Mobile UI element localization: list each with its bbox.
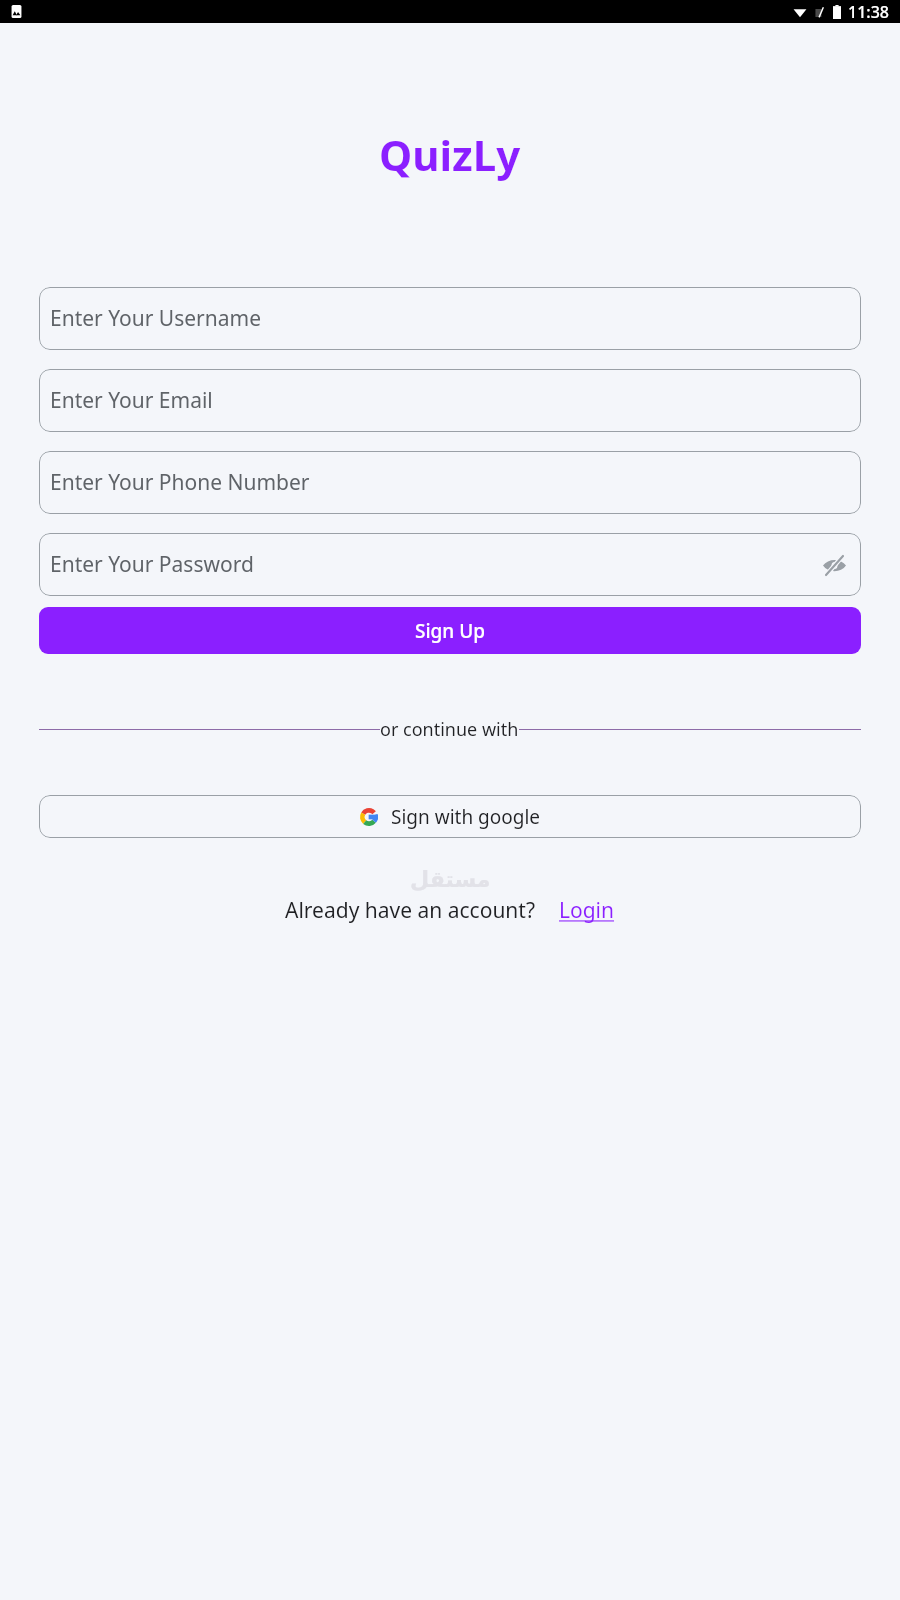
staticText: Enter Your Email [50, 386, 213, 415]
button[interactable]: Login [559, 896, 615, 925]
staticText: مستقل [410, 867, 491, 893]
staticText: Already have an account? [285, 896, 536, 925]
staticText: or continue with [380, 717, 519, 742]
button[interactable]: Sign Up [39, 607, 861, 654]
staticText: Sign with google [391, 804, 541, 830]
button[interactable]: Sign with google [39, 795, 861, 838]
staticText: QuizLy [379, 126, 521, 183]
staticText: 11:38 [848, 1, 889, 23]
button[interactable]: Enter Your Phone Number [39, 451, 861, 514]
button[interactable]: Toggle password visibility [820, 551, 848, 579]
button[interactable]: Enter Your Username [39, 287, 861, 350]
staticText: Login [559, 896, 615, 925]
button[interactable]: Enter Your Password [39, 533, 861, 596]
staticText: Enter Your Phone Number [50, 468, 310, 497]
staticText: Enter Your Username [50, 304, 262, 333]
staticText: Sign Up [415, 618, 486, 644]
button[interactable]: Enter Your Email [39, 369, 861, 432]
staticText: Enter Your Password [50, 550, 254, 579]
